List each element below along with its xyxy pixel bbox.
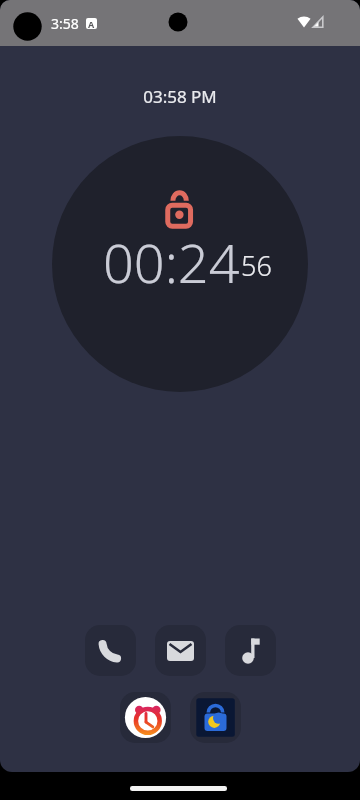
staticText: 03:58 PM: [0, 85, 360, 108]
staticText: 00:24: [103, 225, 240, 299]
button[interactable]: [225, 625, 276, 676]
button[interactable]: [120, 692, 171, 743]
button[interactable]: [85, 625, 136, 676]
button[interactable]: [190, 692, 241, 743]
staticText: 3:58: [51, 14, 79, 33]
button[interactable]: [52, 136, 308, 392]
staticText: A: [88, 18, 95, 30]
button[interactable]: [155, 625, 206, 676]
staticText: 56: [241, 247, 272, 284]
